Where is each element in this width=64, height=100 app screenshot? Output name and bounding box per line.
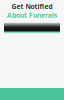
staticText: Get Notified [11, 2, 52, 11]
staticText: About Funerals [7, 11, 57, 20]
